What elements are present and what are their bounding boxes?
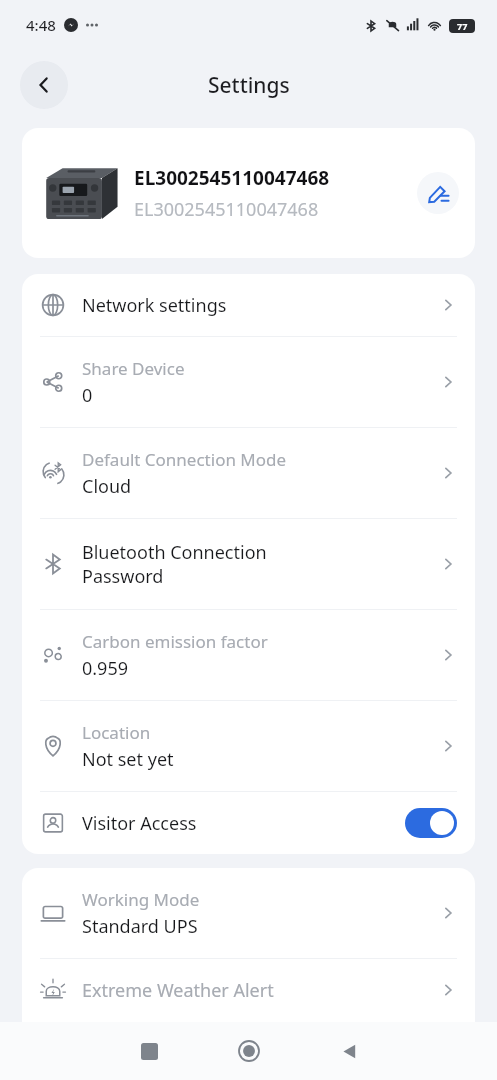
staticText: EL3002545110047468 xyxy=(134,197,319,222)
button[interactable]: Working Mode xyxy=(22,868,475,958)
button[interactable]: Network settings xyxy=(22,274,475,336)
button[interactable]: Back xyxy=(20,61,68,109)
staticText: Location xyxy=(82,721,151,744)
staticText: Working Mode xyxy=(82,888,200,911)
button[interactable]: Bluetooth Connection Password xyxy=(22,519,475,609)
staticText: Extreme Weather Alert xyxy=(82,978,274,1003)
staticText: 77 xyxy=(457,20,468,32)
staticText: Cloud xyxy=(82,474,132,499)
button[interactable]: Visitor Access xyxy=(22,792,475,854)
staticText: Standard UPS xyxy=(82,914,198,939)
staticText: Share Device xyxy=(82,357,185,380)
button[interactable]: Share Device xyxy=(22,337,475,427)
staticText: Default Connection Mode xyxy=(82,448,287,471)
staticText: 0 xyxy=(82,383,93,408)
staticText: Not set yet xyxy=(82,747,174,772)
staticText: EL3002545110047468 xyxy=(134,165,330,191)
button[interactable]: Extreme Weather Alert xyxy=(22,959,475,1021)
button[interactable]: Carbon emission factor xyxy=(22,610,475,700)
button[interactable]: Home xyxy=(199,1026,299,1076)
button[interactable]: Location xyxy=(22,701,475,791)
staticText: Network settings xyxy=(82,293,227,318)
staticText: 0.959 xyxy=(82,656,129,681)
staticText: Bluetooth Connection Password xyxy=(82,540,267,588)
button[interactable]: Default Connection Mode xyxy=(22,428,475,518)
staticText: Carbon emission factor xyxy=(82,630,268,653)
button[interactable]: Back xyxy=(299,1026,399,1076)
button[interactable]: Recent apps xyxy=(99,1026,199,1076)
button[interactable]: Visitor Access toggle xyxy=(405,808,457,838)
staticText: 4:48 xyxy=(26,15,56,35)
staticText: Settings xyxy=(208,71,290,100)
button[interactable]: Edit name xyxy=(417,172,459,214)
button[interactable]: EL3002545110047468 xyxy=(22,128,475,258)
staticText: Visitor Access xyxy=(82,811,405,836)
